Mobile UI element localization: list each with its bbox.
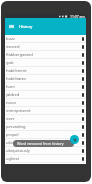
staticText: pervading — [6, 124, 80, 130]
button[interactable]: More options — [80, 123, 86, 131]
button[interactable]: More options — [80, 115, 86, 123]
staticText: ugliest — [6, 156, 80, 162]
staticText: ubiquitously — [6, 148, 80, 154]
staticText: noun — [6, 100, 80, 106]
staticText: exceed — [6, 44, 80, 50]
button[interactable]: More options — [80, 75, 86, 83]
staticText: habilitates — [6, 76, 80, 82]
button[interactable]: More options — [80, 155, 86, 163]
staticText: habiliment — [6, 68, 80, 74]
button[interactable]: More options — [80, 147, 86, 155]
button[interactable]: Add word — [70, 135, 79, 144]
button[interactable]: More options — [80, 67, 86, 75]
button[interactable]: gob — [5, 59, 86, 67]
staticText: omnipresent — [6, 108, 80, 114]
button[interactable]: flabbergasted — [5, 51, 86, 59]
button[interactable]: Open navigation menu — [5, 20, 18, 33]
button[interactable]: exceed — [5, 43, 86, 51]
button[interactable]: More options — [80, 51, 86, 59]
button[interactable]: ubiquitously — [5, 147, 86, 155]
button[interactable]: noun — [5, 99, 86, 107]
button[interactable]: More options — [80, 139, 86, 147]
staticText: over — [6, 116, 80, 122]
button[interactable]: More options — [80, 35, 86, 43]
staticText: History — [19, 24, 33, 29]
button[interactable]: hum — [5, 83, 86, 91]
button[interactable]: propel — [5, 131, 86, 139]
button[interactable]: habiliment — [5, 67, 86, 75]
staticText: jabbed — [6, 92, 80, 98]
button[interactable]: ubiquitous — [5, 139, 86, 147]
staticText: hum — [6, 84, 80, 90]
button[interactable]: buzz — [5, 35, 86, 43]
staticText: 11:07 am — [70, 14, 85, 18]
button[interactable]: More options — [80, 43, 86, 51]
button[interactable]: More options — [80, 91, 86, 99]
button[interactable]: ugliest — [5, 155, 86, 163]
staticText: flabbergasted — [6, 52, 80, 58]
staticText: ubiquitous — [6, 140, 80, 146]
button[interactable]: jabbed — [5, 91, 86, 99]
staticText: Word removed from history — [17, 141, 64, 146]
staticText: gob — [6, 60, 80, 66]
button[interactable]: More options — [80, 131, 86, 139]
button[interactable]: habilitates — [5, 75, 86, 83]
button[interactable]: over — [5, 115, 86, 123]
staticText: propel — [6, 132, 80, 138]
button[interactable]: More options — [80, 83, 86, 91]
button[interactable]: Word removed from history — [13, 140, 74, 147]
button[interactable]: More options — [80, 59, 86, 67]
button[interactable]: omnipresent — [5, 107, 86, 115]
button[interactable]: More options — [80, 99, 86, 107]
staticText: buzz — [6, 36, 80, 42]
button[interactable]: More options — [80, 107, 86, 115]
button[interactable]: pervading — [5, 123, 86, 131]
